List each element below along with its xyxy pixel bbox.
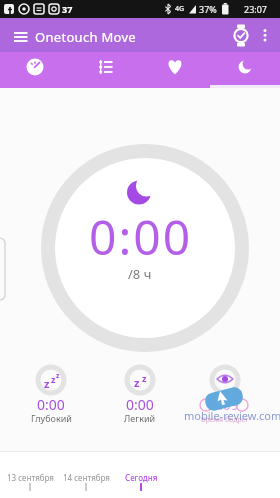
staticText: mobile-review.com xyxy=(184,408,280,423)
button[interactable] xyxy=(2,469,58,498)
staticText: 14 сентября xyxy=(63,472,110,483)
staticText: z xyxy=(134,375,140,389)
button[interactable] xyxy=(21,364,81,434)
button[interactable] xyxy=(0,52,70,88)
button[interactable] xyxy=(58,469,114,498)
button[interactable] xyxy=(140,52,210,88)
staticText: Время бодрст xyxy=(201,415,249,425)
staticText: z xyxy=(56,371,60,381)
staticText: 37% xyxy=(199,3,217,15)
staticText: 23:07 xyxy=(244,3,268,15)
staticText: 0:00 xyxy=(37,395,65,413)
staticText: z xyxy=(142,372,147,384)
button[interactable] xyxy=(8,26,34,46)
staticText: 13 сентября xyxy=(7,472,54,483)
button[interactable] xyxy=(70,52,140,88)
staticText: 0:09 xyxy=(211,395,239,413)
staticText: z xyxy=(44,376,50,390)
staticText: Onetouch Move xyxy=(35,28,136,46)
button[interactable] xyxy=(256,22,274,48)
button[interactable] xyxy=(210,52,280,88)
staticText: z xyxy=(51,373,56,385)
staticText: 37 xyxy=(62,3,73,15)
staticText: 0:00 xyxy=(126,395,154,413)
staticText: Сегодня xyxy=(125,472,158,483)
staticText: /8 ч xyxy=(128,265,152,281)
staticText: 0:00 xyxy=(89,204,193,268)
staticText: Легкий xyxy=(124,412,156,424)
button[interactable] xyxy=(114,469,168,498)
staticText: 4G xyxy=(175,4,185,14)
staticText: Глубокий xyxy=(31,412,72,424)
button[interactable] xyxy=(228,22,254,48)
